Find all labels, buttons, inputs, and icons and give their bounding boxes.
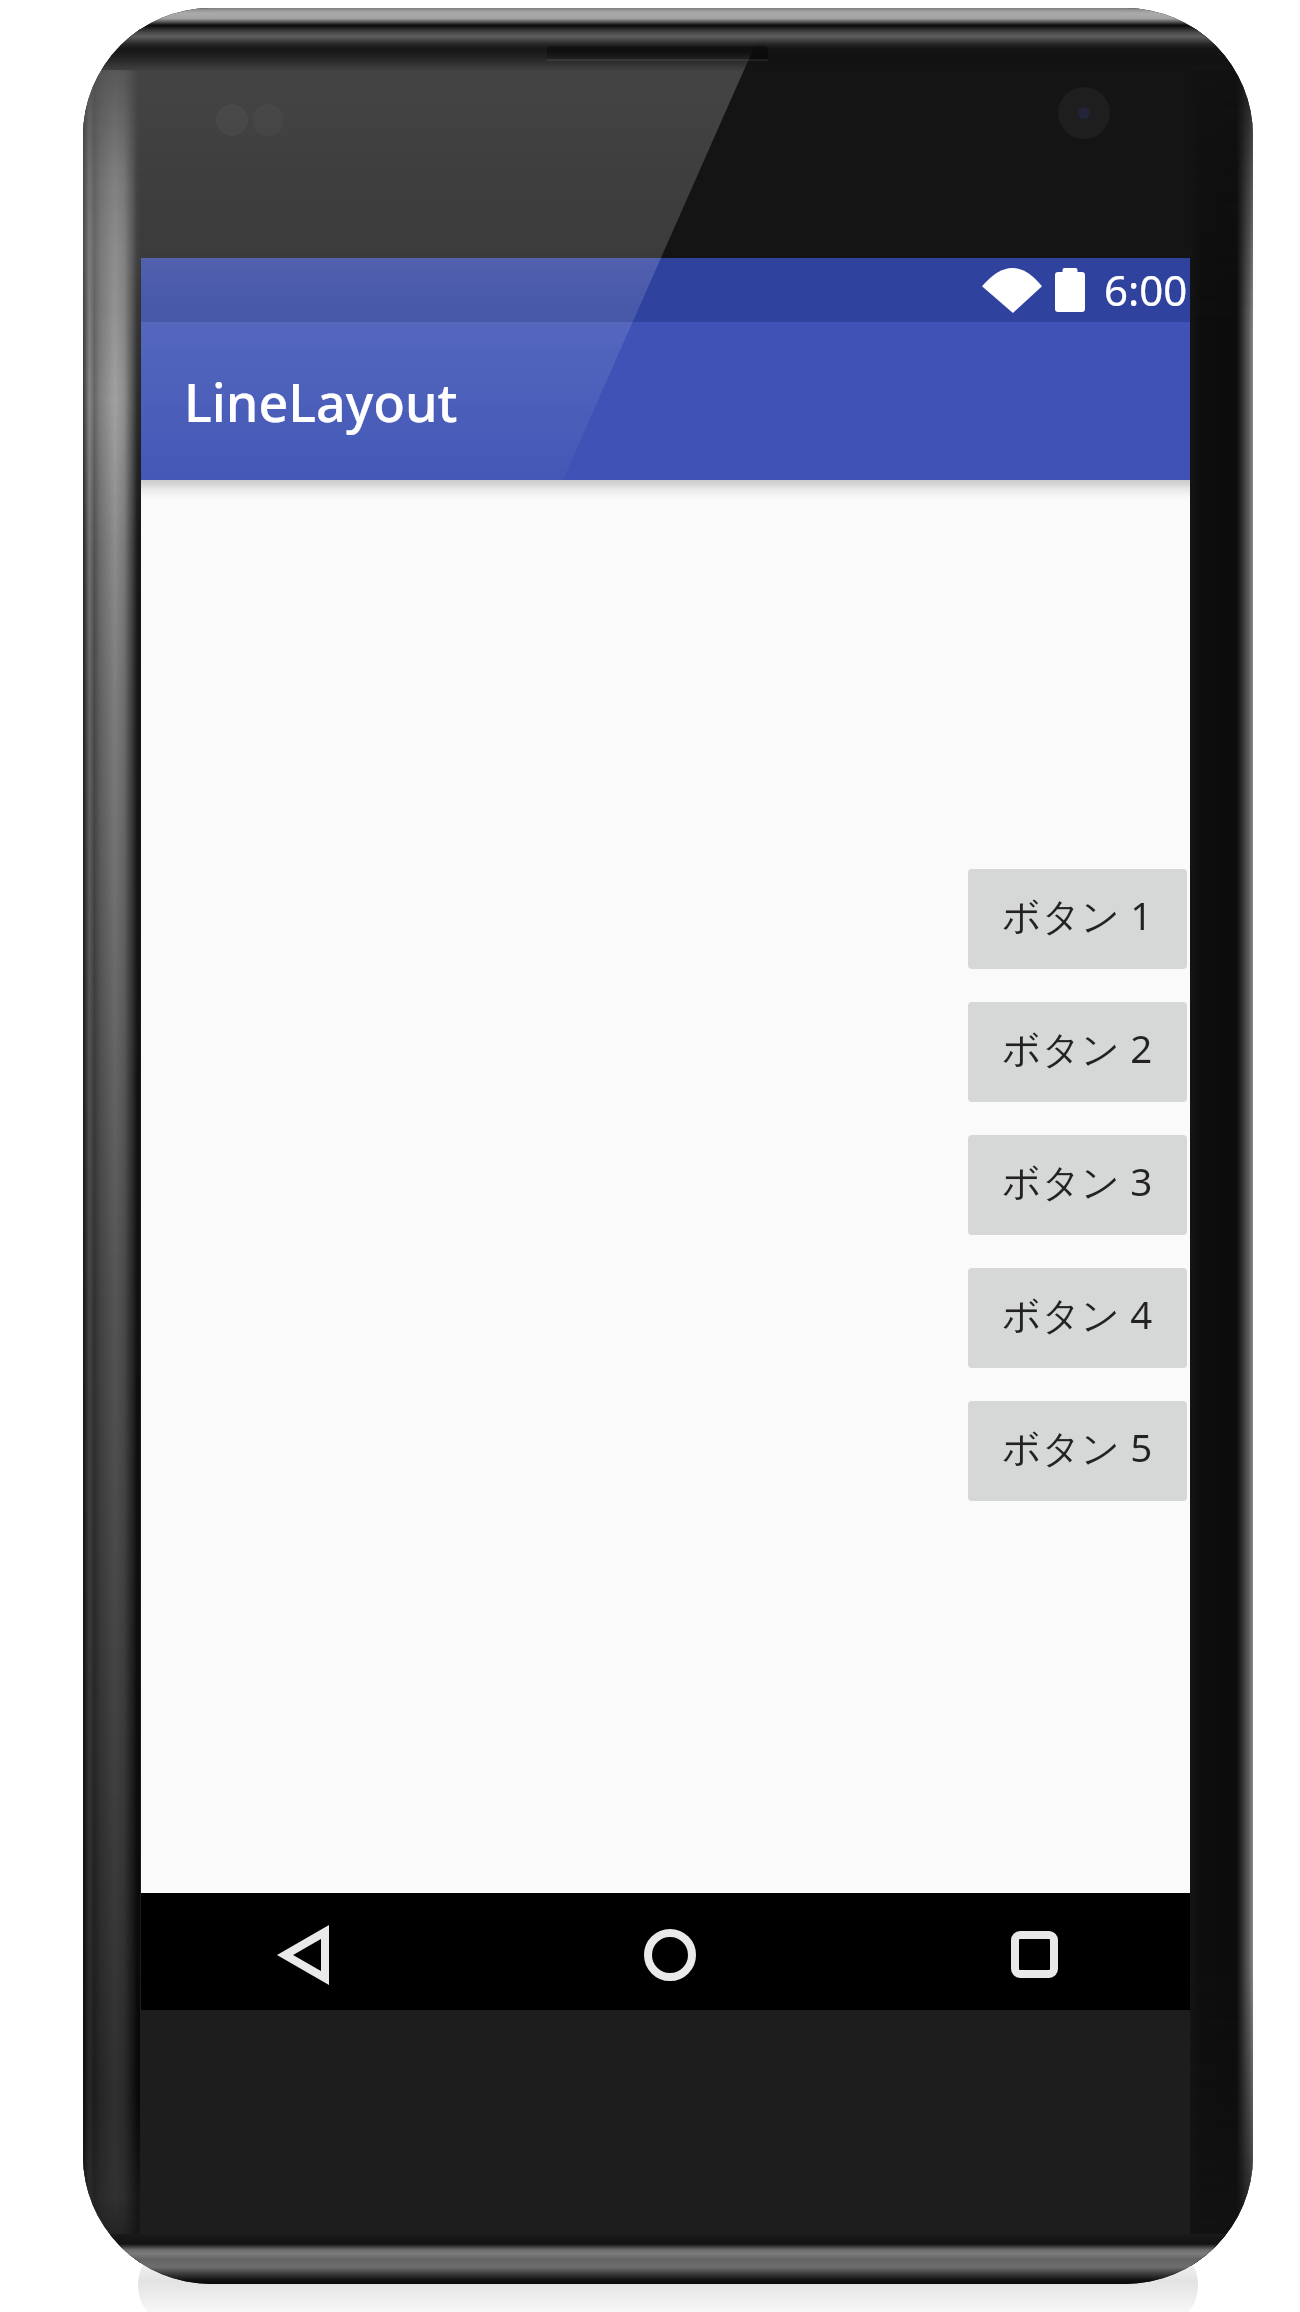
staticText: 6:00 (1104, 261, 1188, 318)
button[interactable]: Back (245, 1896, 365, 2013)
button[interactable]: ボタン 1 (968, 869, 1187, 969)
button[interactable]: ボタン 3 (968, 1135, 1187, 1235)
button[interactable]: ボタン 4 (968, 1268, 1187, 1368)
button[interactable]: ボタン 5 (968, 1401, 1187, 1501)
button[interactable]: Home (610, 1896, 730, 2013)
staticText: LineLayout (184, 366, 458, 437)
staticText: ボタン 2 (1002, 1022, 1153, 1075)
button[interactable]: ボタン 2 (968, 1002, 1187, 1102)
staticText: ボタン 3 (1002, 1155, 1153, 1208)
staticText: ボタン 4 (1002, 1288, 1153, 1341)
button[interactable]: Recents (974, 1896, 1094, 2013)
staticText: ボタン 5 (1002, 1421, 1153, 1474)
staticText: ボタン 1 (1002, 889, 1153, 942)
